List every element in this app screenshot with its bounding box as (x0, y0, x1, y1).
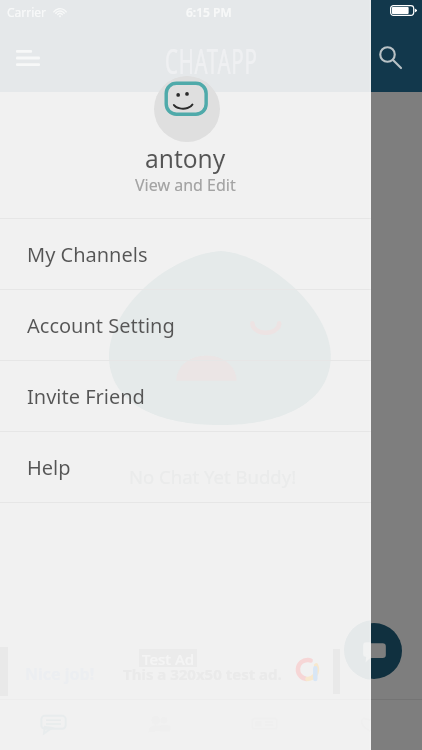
staticText: CHATAPP (165, 37, 258, 85)
staticText: Help (27, 454, 71, 481)
staticText: Carrier (7, 4, 47, 20)
button[interactable]: Open navigation drawer (4, 38, 52, 86)
button[interactable]: Profile photo (154, 76, 220, 142)
staticText: Invite Friend (27, 383, 145, 410)
button[interactable]: New chat (346, 623, 402, 679)
staticText: Test Ad (142, 649, 195, 667)
staticText: Carrier (7, 4, 47, 20)
staticText: 6:15 PM (186, 4, 232, 20)
button[interactable]: Invite Friend (0, 361, 371, 431)
staticText: View and Edit (135, 174, 236, 196)
button[interactable]: My Channels (0, 219, 371, 289)
staticText: My Channels (27, 241, 148, 268)
button[interactable]: Help (0, 432, 371, 502)
staticText: Account Setting (27, 312, 175, 339)
staticText: antony (145, 142, 226, 175)
button[interactable]: Search (367, 34, 414, 81)
button[interactable]: Account Setting (0, 290, 371, 360)
staticText: 6:15 PM (186, 4, 232, 20)
staticText: CHATAPP (165, 37, 258, 85)
